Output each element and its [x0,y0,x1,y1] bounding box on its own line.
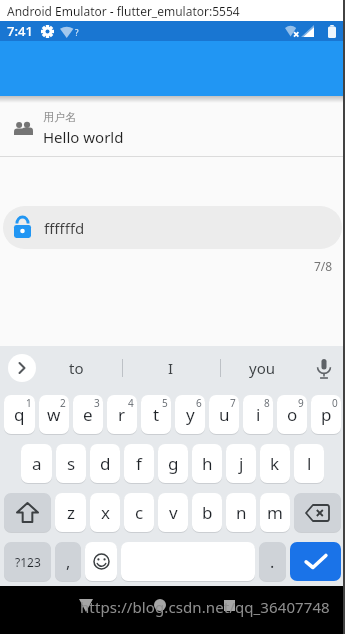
staticText: you [249,358,275,378]
staticText: i [256,403,261,426]
button[interactable] [8,354,36,382]
button[interactable]: s [56,444,86,483]
button[interactable]: v [158,493,188,532]
staticText: u [219,403,230,426]
button[interactable]: j [226,444,256,483]
button[interactable]: you [232,346,292,390]
button[interactable]: b [192,493,222,532]
staticText: 3 [94,396,100,410]
staticText: 7:41 [7,22,33,40]
staticText: ffffffd [44,218,85,238]
staticText: g [168,452,179,475]
staticText: 7/8 [314,258,333,274]
staticText: 0 [332,396,338,410]
button[interactable]: p [311,395,341,434]
staticText: d [100,452,111,475]
staticText: v [169,501,178,524]
button[interactable] [4,493,51,532]
button[interactable] [154,599,166,611]
staticText: x [101,501,110,524]
button[interactable]: ?123 [4,542,51,581]
staticText: . [270,551,275,573]
button[interactable]: t [141,395,171,434]
button[interactable]: x [90,493,120,532]
button[interactable]: e [73,395,103,434]
staticText: 6 [196,396,202,410]
staticText: ?123 [15,554,41,570]
staticText: p [321,403,332,426]
staticText: Android Emulator - flutter_emulator:5554 [7,3,240,19]
button[interactable]: n [226,493,256,532]
staticText: o [287,403,298,426]
staticText: y [186,403,195,426]
button[interactable] [316,358,332,379]
staticText: m [267,501,283,524]
staticText: k [270,452,280,475]
button[interactable]: i [243,395,273,434]
button[interactable]: I [141,346,201,390]
staticText: f [136,452,142,475]
button[interactable]: f [124,444,154,483]
staticText: I [168,358,174,378]
button[interactable]: to [46,346,106,390]
staticText: 4 [128,396,134,410]
staticText: ? [75,27,79,38]
button[interactable] [79,599,93,612]
button[interactable] [85,542,117,581]
staticText: b [202,501,213,524]
staticText: e [83,403,93,426]
staticText: z [67,501,75,524]
button[interactable]: u [209,395,239,434]
button[interactable]: g [158,444,188,483]
button[interactable] [0,41,345,96]
button[interactable]: r [107,395,137,434]
staticText: 用户名 [43,110,76,124]
button[interactable]: 用户名 [0,104,345,156]
staticText: 7 [230,396,236,410]
button[interactable]: c [124,493,154,532]
staticText: w [47,403,61,426]
staticText: j [239,452,244,475]
staticText: s [67,452,76,475]
staticText: 8 [264,396,270,410]
button[interactable]: h [192,444,222,483]
staticText: n [236,501,247,524]
staticText: a [32,452,42,475]
button[interactable]: d [90,444,120,483]
staticText: , [66,551,71,573]
staticText: r [118,403,126,426]
staticText: Hello world [43,127,124,147]
staticText: https://blog.csdn.net/qq_36407748 [80,597,330,617]
button[interactable]: , [55,542,81,581]
staticText: 5 [162,396,168,410]
staticText: c [135,501,144,524]
button[interactable]: w [39,395,69,434]
staticText: q [14,403,25,426]
button[interactable]: ffffffd [3,206,342,249]
button[interactable]: k [260,444,290,483]
button[interactable] [294,493,341,532]
staticText: 2 [60,396,66,410]
staticText: to [69,358,84,378]
button[interactable]: y [175,395,205,434]
staticText: 9 [298,396,304,410]
button[interactable]: l [294,444,324,483]
staticText: 1 [26,396,32,410]
staticText: t [153,403,160,426]
button[interactable] [224,600,235,611]
button[interactable]: z [55,493,86,532]
button[interactable]: a [21,444,52,483]
button[interactable]: m [260,493,290,532]
button[interactable]: . [259,542,286,581]
staticText: h [202,452,213,475]
button[interactable]: o [277,395,307,434]
button[interactable]: q [4,395,35,434]
button[interactable] [290,542,341,581]
staticText: l [307,452,312,475]
